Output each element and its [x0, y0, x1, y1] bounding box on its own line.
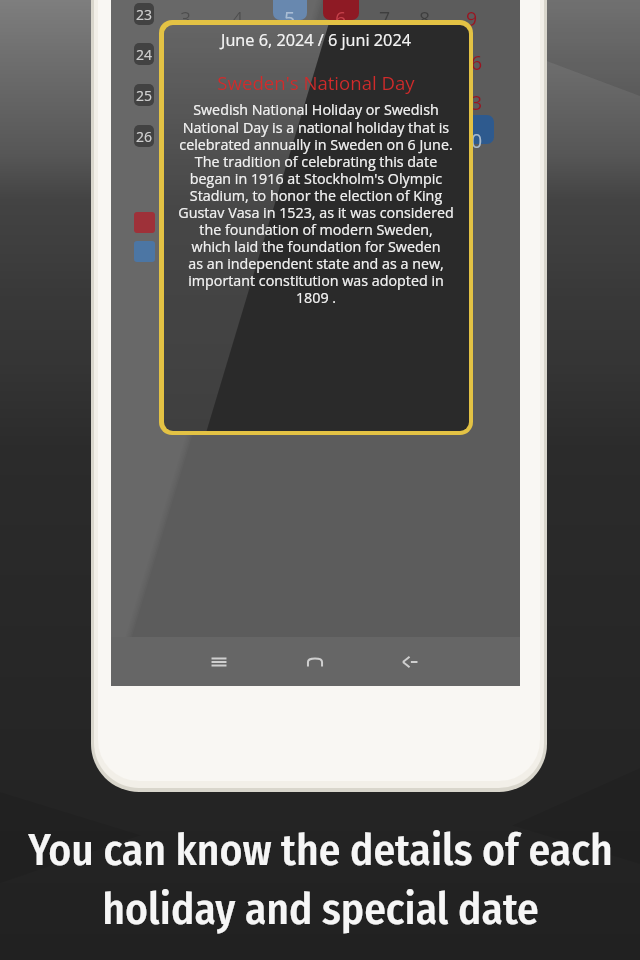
staticText: 0 [471, 127, 483, 154]
staticText: 24 [136, 45, 153, 64]
button[interactable]: Back [382, 637, 438, 686]
button[interactable]: Recent apps [191, 637, 247, 686]
staticText: 3 [471, 89, 483, 116]
staticText: 23 [136, 5, 153, 24]
staticText: 7 [379, 5, 391, 32]
staticText: 3 [180, 5, 192, 32]
staticText: 6 [335, 5, 347, 32]
staticText: 26 [136, 127, 153, 146]
staticText: 25 [136, 86, 153, 105]
button[interactable]: June 6, 2024 / 6 juni 2024 [159, 20, 473, 435]
staticText: 4 [232, 5, 244, 32]
button[interactable]: Home [287, 637, 343, 686]
staticText: 9 [466, 5, 478, 32]
staticText: June 6, 2024 / 6 juni 2024 [221, 29, 411, 51]
staticText: 5 [284, 5, 296, 32]
staticText: You can know the details of each [28, 825, 613, 877]
staticText: holiday and special date [102, 884, 539, 936]
staticText: 8 [419, 5, 431, 32]
staticText: Swedish National Holiday or Swedish Nati… [178, 100, 454, 307]
staticText: 6 [471, 49, 483, 76]
staticText: Sweden's National Day [217, 70, 415, 95]
